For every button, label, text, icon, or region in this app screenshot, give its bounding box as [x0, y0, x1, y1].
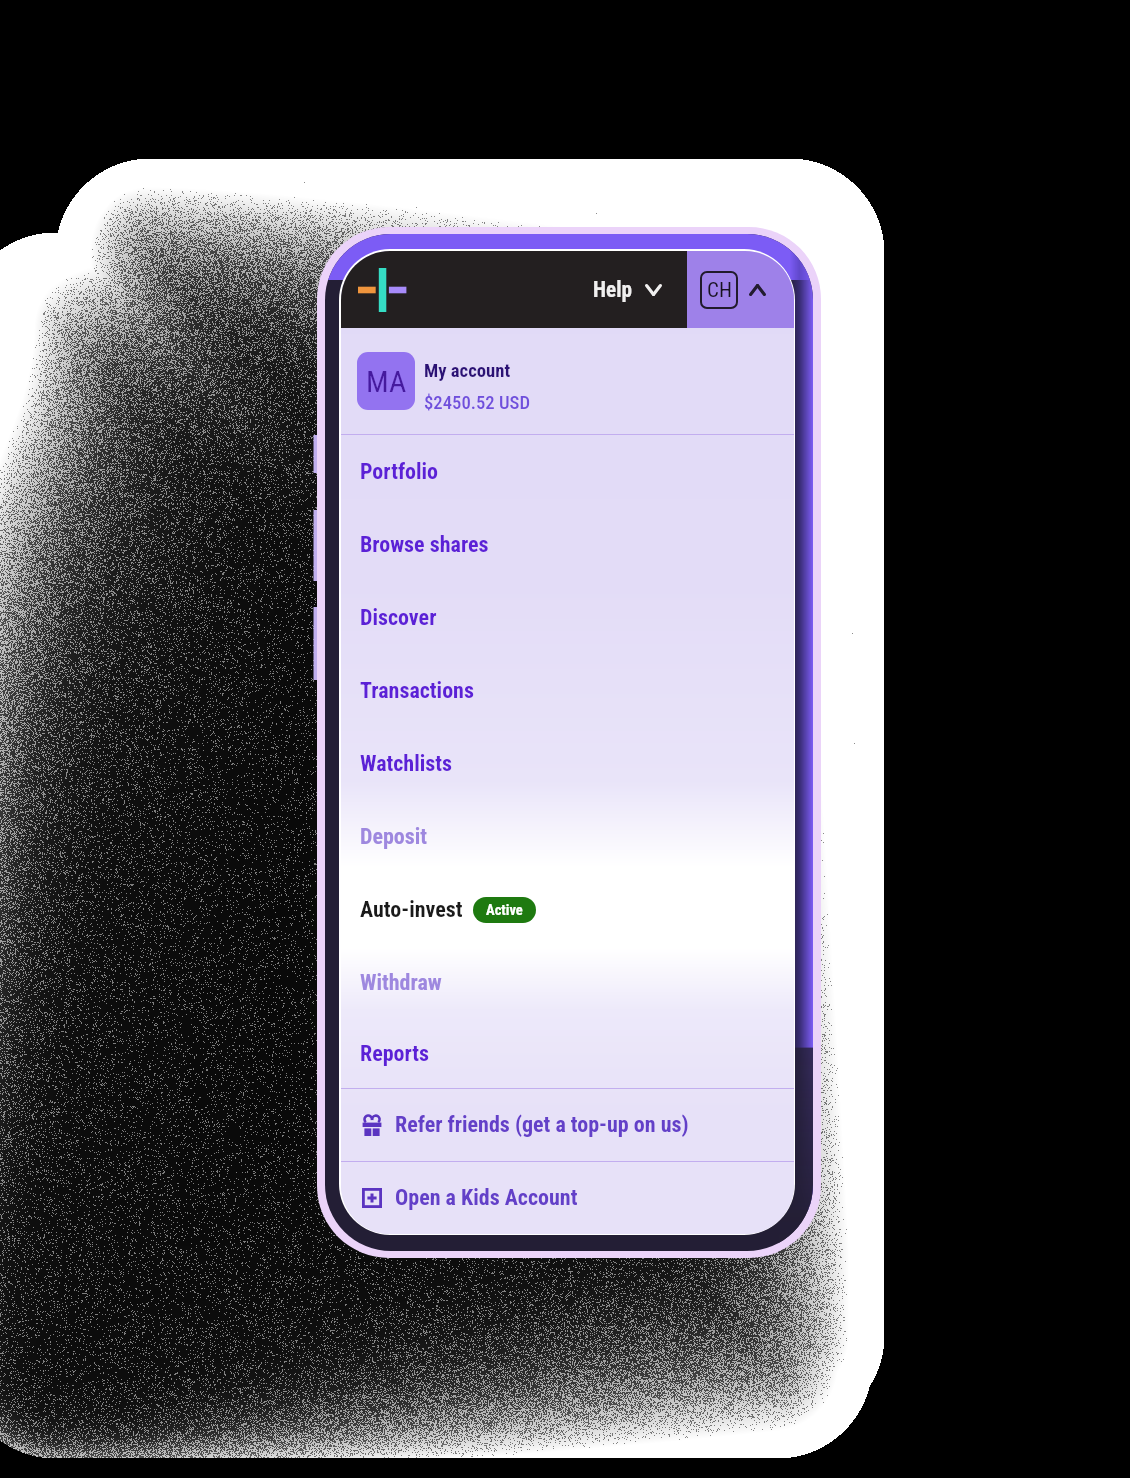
staticText: Help	[593, 277, 632, 302]
staticText: Transactions	[360, 678, 474, 704]
button[interactable]: Portfolio	[341, 435, 794, 508]
button[interactable]: Withdraw	[341, 946, 794, 1019]
staticText: Watchlists	[360, 751, 453, 777]
staticText: Discover	[360, 605, 437, 631]
staticText: CH	[707, 278, 732, 303]
button[interactable]: MA	[341, 328, 794, 434]
staticText: Reports	[360, 1041, 430, 1067]
staticText: Deposit	[360, 824, 428, 850]
staticText: $2450.52 USD	[424, 392, 531, 414]
button[interactable]: Transactions	[341, 654, 794, 727]
button[interactable]: Reports	[341, 1019, 794, 1088]
staticText: Portfolio	[360, 459, 439, 485]
staticText: My account	[424, 360, 511, 382]
button[interactable]: Open a Kids Account	[341, 1162, 794, 1234]
staticText: MA	[366, 364, 407, 399]
staticText: Auto-invest	[360, 897, 463, 923]
button[interactable]: Watchlists	[341, 727, 794, 800]
button[interactable]: Discover	[341, 581, 794, 654]
button[interactable]: Browse shares	[341, 508, 794, 581]
button[interactable]: Refer friends (get a top-up on us)	[341, 1089, 794, 1161]
staticText: Browse shares	[360, 532, 489, 558]
button[interactable]: Account menu	[687, 251, 794, 328]
staticText: Open a Kids Account	[395, 1185, 578, 1211]
button[interactable]: Help	[589, 269, 666, 310]
staticText: Refer friends (get a top-up on us)	[395, 1112, 689, 1138]
staticText: Active	[486, 902, 523, 919]
button[interactable]: Auto-invest	[341, 873, 794, 946]
button[interactable]: Deposit	[341, 800, 794, 873]
staticText: Withdraw	[360, 970, 442, 996]
